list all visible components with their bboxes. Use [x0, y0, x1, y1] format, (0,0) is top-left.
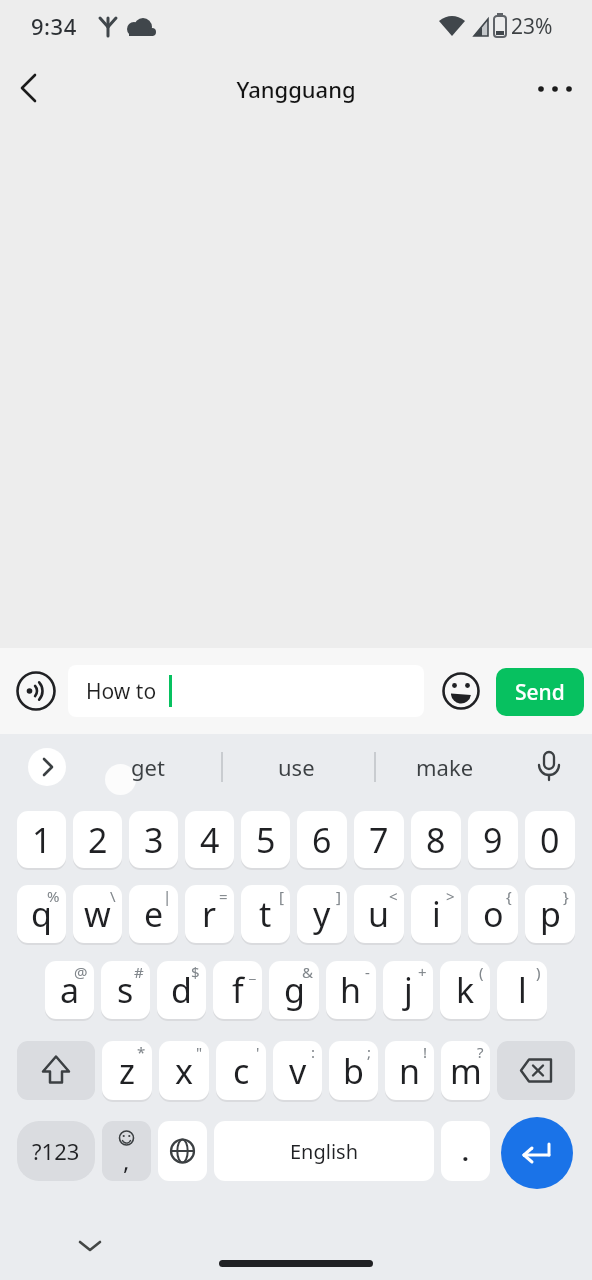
staticText: ! — [423, 1042, 428, 1062]
staticText: t — [259, 891, 272, 937]
button[interactable]: y — [297, 885, 347, 943]
staticText: 7 — [369, 817, 389, 863]
staticText: 23% — [511, 12, 553, 41]
staticText: make — [416, 752, 474, 782]
button[interactable]: k — [440, 961, 490, 1019]
button[interactable]: . — [441, 1121, 490, 1181]
button[interactable] — [527, 745, 571, 789]
button[interactable]: ?123 — [17, 1121, 95, 1181]
staticText: get — [131, 752, 165, 782]
button[interactable]: h — [326, 961, 376, 1019]
staticText: i — [432, 891, 441, 937]
button[interactable]: q — [17, 885, 66, 943]
staticText: - — [365, 962, 370, 982]
staticText: ( — [479, 962, 484, 982]
staticText: e — [144, 891, 164, 937]
staticText: g — [284, 967, 305, 1013]
button[interactable] — [28, 748, 66, 786]
button[interactable]: English — [214, 1121, 434, 1181]
button[interactable]: 5 — [241, 811, 290, 868]
button[interactable]: a — [45, 961, 94, 1019]
button[interactable]: g — [269, 961, 319, 1019]
button[interactable]: j — [383, 961, 433, 1019]
staticText: \ — [110, 886, 116, 906]
button[interactable] — [440, 670, 482, 712]
staticText: ?123 — [32, 1136, 80, 1166]
button[interactable]: , — [102, 1121, 151, 1181]
staticText: v — [289, 1048, 307, 1094]
button[interactable]: z — [102, 1041, 152, 1100]
staticText: ] — [336, 886, 341, 906]
button[interactable]: 7 — [354, 811, 404, 868]
button[interactable]: How to — [68, 665, 424, 717]
button[interactable]: i — [411, 885, 461, 943]
staticText: " — [196, 1042, 203, 1062]
staticText: 8 — [426, 817, 446, 863]
button[interactable]: 6 — [297, 811, 347, 868]
staticText: | — [163, 886, 172, 906]
button[interactable]: 0 — [525, 811, 575, 868]
staticText: b — [343, 1048, 364, 1094]
button[interactable]: s — [101, 961, 150, 1019]
button[interactable]: w — [73, 885, 122, 943]
button[interactable] — [528, 64, 580, 112]
button[interactable]: make — [372, 740, 518, 794]
button[interactable]: l — [497, 961, 547, 1019]
staticText: > — [446, 886, 455, 906]
staticText: . — [462, 1135, 469, 1168]
button[interactable]: n — [385, 1041, 434, 1100]
button[interactable]: b — [329, 1041, 378, 1100]
staticText: x — [175, 1048, 193, 1094]
button[interactable] — [66, 1228, 114, 1264]
button[interactable]: 4 — [185, 811, 234, 868]
staticText: ; — [367, 1042, 372, 1062]
staticText: 9:34 — [31, 11, 77, 41]
button[interactable]: u — [354, 885, 404, 943]
button[interactable]: 9 — [468, 811, 518, 868]
button[interactable]: 1 — [17, 811, 66, 868]
staticText: % — [47, 886, 60, 906]
button[interactable]: 2 — [73, 811, 122, 868]
staticText: n — [399, 1048, 421, 1094]
staticText: u — [368, 891, 390, 937]
button[interactable]: d — [157, 961, 206, 1019]
button[interactable]: c — [216, 1041, 266, 1100]
staticText: } — [563, 886, 569, 906]
button[interactable]: r — [185, 885, 234, 943]
button[interactable] — [14, 669, 58, 713]
button[interactable]: o — [468, 885, 518, 943]
staticText: & — [302, 962, 313, 982]
button[interactable]: use — [224, 740, 368, 794]
staticText: * — [137, 1042, 146, 1062]
button[interactable]: p — [525, 885, 575, 943]
staticText: ) — [536, 962, 541, 982]
button[interactable] — [501, 1117, 573, 1189]
staticText: 6 — [312, 817, 332, 863]
button[interactable]: v — [273, 1041, 322, 1100]
button[interactable]: e — [129, 885, 178, 943]
staticText: # — [134, 962, 144, 982]
staticText: English — [290, 1138, 359, 1165]
staticText: h — [340, 967, 362, 1013]
staticText: use — [278, 752, 315, 782]
button[interactable]: 8 — [411, 811, 461, 868]
button[interactable]: t — [241, 885, 290, 943]
button[interactable]: f — [213, 961, 262, 1019]
button[interactable]: Send — [496, 668, 584, 716]
staticText: < — [389, 886, 398, 906]
staticText: 5 — [256, 817, 276, 863]
staticText: { — [506, 886, 512, 906]
button[interactable] — [8, 62, 60, 114]
button[interactable]: get — [76, 740, 220, 794]
button[interactable]: m — [441, 1041, 490, 1100]
staticText: r — [202, 891, 217, 937]
staticText: Send — [515, 678, 565, 707]
button[interactable]: x — [159, 1041, 209, 1100]
staticText: k — [456, 967, 475, 1013]
staticText: c — [233, 1048, 250, 1094]
staticText: y — [313, 891, 331, 937]
button[interactable]: 3 — [129, 811, 178, 868]
button[interactable] — [497, 1041, 575, 1100]
button[interactable] — [17, 1041, 95, 1100]
button[interactable] — [158, 1121, 207, 1181]
